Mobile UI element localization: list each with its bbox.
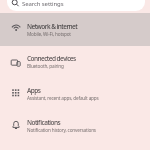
staticText: Apps <box>27 86 41 95</box>
staticText: Mobile, Wi-Fi, hotspot <box>27 31 71 37</box>
staticText: Network & internet <box>27 22 78 31</box>
staticText: Search settings <box>22 0 64 8</box>
staticText: Notifications <box>27 118 61 127</box>
staticText: Assistant, recent apps, default apps <box>27 95 99 101</box>
button[interactable]: Network & internet <box>0 14 150 46</box>
button[interactable]: Notifications <box>0 110 150 142</box>
button[interactable]: Connected devices <box>0 46 150 78</box>
staticText: Notification history, conversations <box>27 127 96 133</box>
button[interactable]: Apps <box>0 78 150 110</box>
button[interactable] <box>7 0 145 11</box>
staticText: Connected devices <box>27 54 76 63</box>
staticText: Bluetooth, pairing <box>27 63 64 69</box>
